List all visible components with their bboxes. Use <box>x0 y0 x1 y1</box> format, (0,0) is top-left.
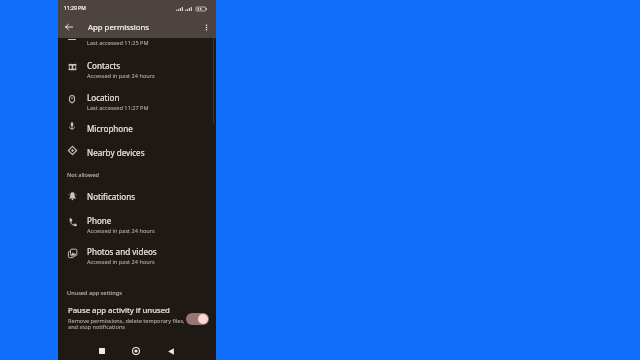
staticText: 11:29 PM <box>64 5 86 12</box>
button[interactable]: Home <box>128 343 144 359</box>
staticText: Not allowed <box>67 171 100 179</box>
staticText: Accessed in past 24 hours <box>87 72 155 80</box>
staticText: Notifications <box>87 191 136 202</box>
button[interactable]: Phone <box>58 207 216 239</box>
button[interactable]: Recent apps <box>94 343 110 359</box>
button[interactable]: Location <box>58 84 216 116</box>
staticText: Microphone <box>87 123 133 134</box>
staticText: Location <box>87 92 120 103</box>
button[interactable]: Microphone <box>58 115 216 139</box>
button[interactable]: Contacts <box>58 52 216 84</box>
staticText: Contacts <box>87 60 121 71</box>
button[interactable]: Nearby devices <box>58 139 216 163</box>
button[interactable]: Pause app activity if unused toggle <box>186 313 209 325</box>
staticText: App permissions <box>88 22 150 33</box>
staticText: Accessed in past 24 hours <box>87 258 155 266</box>
staticText: Photos and videos <box>87 246 157 257</box>
button[interactable]: Back <box>59 17 79 37</box>
button[interactable]: More options <box>197 18 215 36</box>
button[interactable]: Notifications <box>58 183 216 207</box>
button[interactable]: Pause app activity if unused <box>58 302 216 332</box>
staticText: Last accessed 11:25 PM <box>87 39 149 47</box>
staticText: Last accessed 11:27 PM <box>87 104 149 112</box>
button[interactable]: Photos and videos <box>58 238 216 270</box>
staticText: Pause app activity if unused <box>68 305 170 316</box>
staticText: Phone <box>87 215 112 226</box>
button[interactable]: Back <box>163 343 179 359</box>
staticText: Unused app settings <box>67 289 123 297</box>
staticText: Nearby devices <box>87 147 145 158</box>
staticText: Remove permissions, delete temporary fil… <box>68 317 185 331</box>
staticText: Accessed in past 24 hours <box>87 227 155 235</box>
